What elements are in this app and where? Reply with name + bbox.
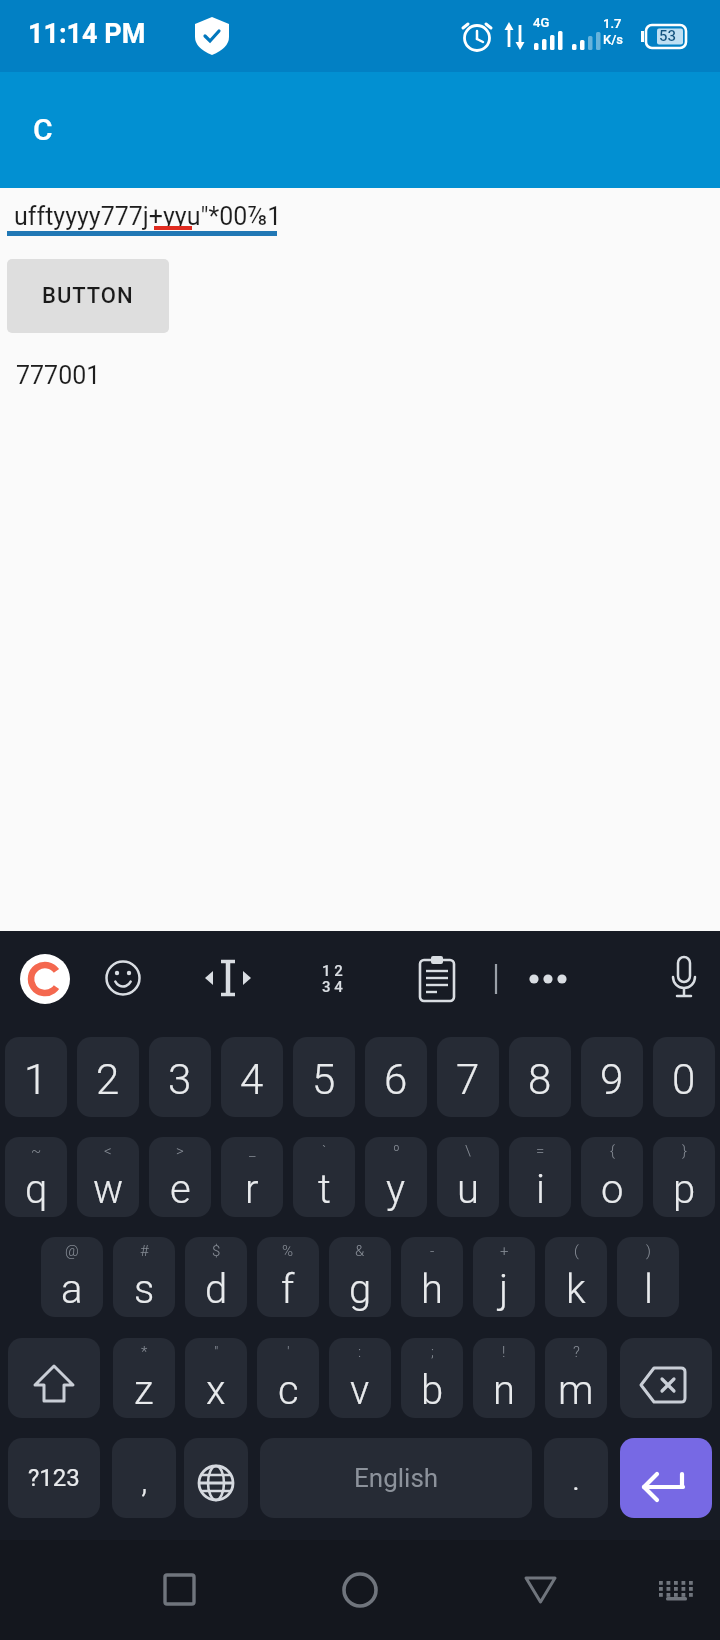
button[interactable]: ' (257, 1338, 319, 1418)
staticText: * (141, 1343, 148, 1361)
button[interactable] (203, 956, 253, 1006)
button[interactable]: 9 (581, 1037, 643, 1117)
button[interactable]: ? (545, 1338, 607, 1418)
staticText: 1 2 3 4 (322, 962, 343, 996)
button[interactable]: ; (401, 1338, 463, 1418)
button[interactable]: + (473, 1237, 535, 1317)
staticText: b (421, 1367, 444, 1414)
staticText: ' (287, 1343, 290, 1361)
staticText: ?123 (28, 1464, 80, 1492)
staticText: r (245, 1166, 259, 1213)
button[interactable]: \ (437, 1137, 499, 1217)
button[interactable]: 3 (149, 1037, 211, 1117)
staticText: q (25, 1166, 48, 1213)
staticText: c (278, 1367, 299, 1414)
staticText: 11:14 PM (28, 18, 146, 50)
staticText: ~ (31, 1142, 42, 1160)
staticText: j (499, 1266, 509, 1313)
staticText: # (140, 1242, 149, 1260)
button[interactable] (8, 1338, 100, 1418)
button[interactable]: 2 (77, 1037, 139, 1117)
button[interactable]: : (329, 1338, 391, 1418)
button[interactable] (648, 1576, 703, 1631)
button[interactable]: 5 (293, 1037, 355, 1117)
button[interactable]: > (149, 1137, 211, 1217)
staticText: ` (322, 1142, 327, 1160)
button[interactable]: 1 2 3 4 (310, 958, 354, 1000)
button[interactable]: _ (221, 1137, 283, 1217)
staticText: " (214, 1343, 219, 1361)
staticText: { (610, 1142, 615, 1160)
button[interactable]: 7 (437, 1037, 499, 1117)
staticText: 1 (24, 1055, 48, 1104)
button[interactable]: < (77, 1137, 139, 1217)
button[interactable] (620, 1338, 712, 1418)
staticText: i (536, 1166, 545, 1213)
button[interactable]: ?123 (8, 1438, 100, 1518)
staticText: a (61, 1266, 83, 1313)
staticText: o (601, 1166, 624, 1213)
staticText: - (430, 1242, 435, 1260)
staticText: t (318, 1166, 331, 1213)
button[interactable]: 6 (365, 1037, 427, 1117)
button[interactable]: , (112, 1438, 176, 1518)
staticText: e (170, 1166, 191, 1213)
staticText: z (134, 1367, 154, 1414)
button[interactable]: 1 (5, 1037, 67, 1117)
button[interactable]: - (401, 1237, 463, 1317)
staticText: C (33, 112, 53, 147)
staticText: ? (573, 1343, 580, 1361)
button[interactable]: 4 (221, 1037, 283, 1117)
staticText: } (682, 1142, 687, 1160)
button[interactable]: = (509, 1137, 571, 1217)
button[interactable]: ~ (5, 1137, 67, 1217)
button[interactable]: } (653, 1137, 715, 1217)
staticText: h (421, 1266, 443, 1313)
staticText: ! (502, 1343, 506, 1361)
button[interactable]: @ (41, 1237, 103, 1317)
button[interactable]: . (544, 1438, 608, 1518)
button[interactable]: " (185, 1338, 247, 1418)
staticText: , (141, 1460, 148, 1500)
button[interactable]: ) (617, 1237, 679, 1317)
staticText: & (355, 1242, 365, 1260)
button[interactable]: % (257, 1237, 319, 1317)
staticText: m (558, 1367, 594, 1414)
button[interactable]: ` (293, 1137, 355, 1217)
button[interactable]: 0 (653, 1037, 715, 1117)
button[interactable] (20, 954, 70, 1004)
button[interactable] (332, 1576, 387, 1631)
button[interactable]: { (581, 1137, 643, 1217)
staticText: º (393, 1142, 400, 1160)
staticText: ufftyyyy777j+yyu"*00⅞1 (14, 202, 282, 231)
button[interactable] (184, 1438, 248, 1518)
button[interactable] (152, 1576, 207, 1631)
staticText: 3 (168, 1055, 192, 1104)
staticText: 8 (528, 1055, 552, 1104)
staticText: 53 (659, 27, 677, 45)
button[interactable] (512, 1576, 567, 1631)
button[interactable] (620, 1438, 712, 1518)
button[interactable] (101, 956, 145, 1000)
staticText: > (176, 1142, 184, 1160)
button[interactable]: ( (545, 1237, 607, 1317)
button[interactable]: BUTTON (7, 259, 169, 333)
button[interactable]: $ (185, 1237, 247, 1317)
button[interactable] (526, 961, 570, 997)
staticText: 4 (240, 1055, 264, 1104)
button[interactable]: English (260, 1438, 532, 1518)
staticText: k (566, 1266, 586, 1313)
staticText: 9 (600, 1055, 624, 1104)
staticText: + (500, 1242, 509, 1260)
button[interactable]: ! (473, 1338, 535, 1418)
staticText: = (536, 1142, 545, 1160)
button[interactable]: 8 (509, 1037, 571, 1117)
button[interactable]: & (329, 1237, 391, 1317)
button[interactable] (662, 955, 706, 1005)
button[interactable]: º (365, 1137, 427, 1217)
button[interactable]: * (113, 1338, 175, 1418)
staticText: 7 (456, 1055, 480, 1104)
button[interactable] (415, 955, 459, 1005)
button[interactable]: # (113, 1237, 175, 1317)
staticText: $ (212, 1242, 221, 1260)
